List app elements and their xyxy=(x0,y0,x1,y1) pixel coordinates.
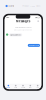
staticText: 9:41 xyxy=(6,17,9,18)
staticText: Scuttle xyxy=(8,5,14,7)
button[interactable]: Product xyxy=(22,5,28,7)
staticText: End-to-end encrypted xyxy=(14,27,31,28)
staticText: Chats xyxy=(6,87,10,88)
button[interactable]: Account xyxy=(37,20,39,22)
staticText: Standup in five? xyxy=(10,34,21,36)
button[interactable]: Chats xyxy=(5,85,12,88)
button[interactable]: Calls xyxy=(12,85,19,88)
staticText: Messages xyxy=(16,19,30,23)
staticText: Pricing xyxy=(30,5,35,7)
staticText: On my way now xyxy=(29,44,39,46)
button[interactable]: You xyxy=(34,85,41,88)
staticText: Docs xyxy=(36,5,40,7)
staticText: Teams xyxy=(20,87,25,88)
staticText: You xyxy=(36,87,39,88)
staticText: Calls xyxy=(14,87,17,88)
button[interactable]: Scuttle home xyxy=(5,5,14,7)
button[interactable]: Files xyxy=(27,85,34,88)
button[interactable]: Pricing xyxy=(30,5,35,7)
staticText: Product xyxy=(22,5,28,7)
button[interactable]: Teams xyxy=(19,85,27,88)
button[interactable]: Docs xyxy=(36,5,40,7)
staticText: Files xyxy=(29,87,32,88)
